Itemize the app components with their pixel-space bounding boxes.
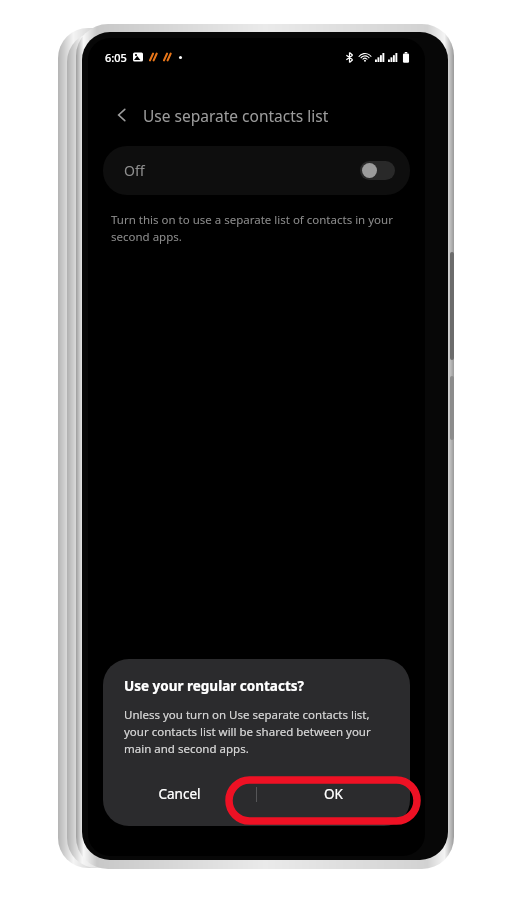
staticText: 6:05 [105, 50, 127, 65]
staticText: OK [324, 785, 343, 803]
button[interactable]: OK [257, 772, 410, 816]
button[interactable]: Back [108, 101, 136, 129]
staticText: Use separate contacts list [143, 105, 329, 126]
staticText: Off [124, 161, 145, 180]
button[interactable]: Cancel [103, 772, 256, 816]
button[interactable]: Use separate contacts list toggle [360, 161, 395, 180]
staticText: Use your regular contacts? [124, 677, 304, 695]
staticText: Cancel [158, 785, 201, 803]
staticText: Unless you turn on Use separate contacts… [124, 707, 389, 757]
staticText: Turn this on to use a separate list of c… [111, 212, 397, 245]
button[interactable]: Off [103, 146, 410, 195]
